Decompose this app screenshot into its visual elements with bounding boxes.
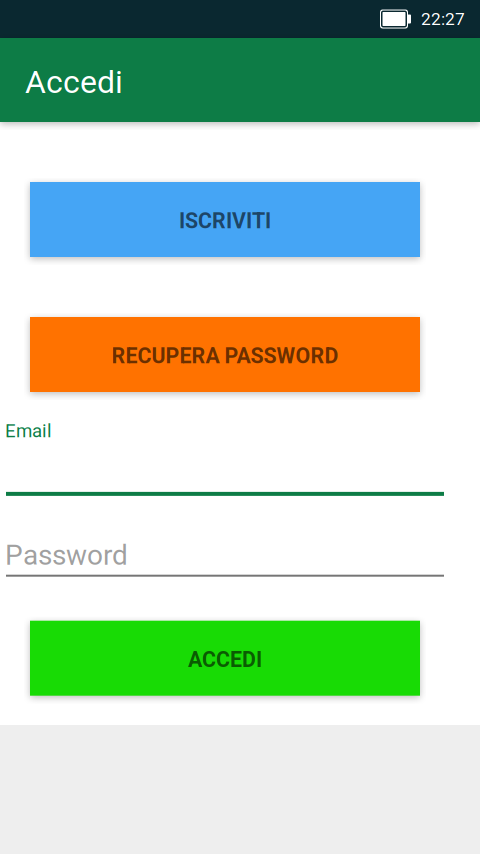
staticText: ACCEDI [188,647,262,672]
button[interactable]: ACCEDI [30,621,420,696]
staticText: Password [5,539,128,572]
staticText: Accedi [25,63,123,101]
button[interactable]: Email [0,420,480,496]
staticText: ISCRIVITI [179,208,271,233]
staticText: Email [5,420,52,442]
button[interactable]: RECUPERA PASSWORD [30,317,420,392]
staticText: 22:27 [421,9,465,29]
button[interactable]: Password [0,539,480,577]
button[interactable]: ISCRIVITI [30,182,420,257]
staticText: RECUPERA PASSWORD [111,343,338,368]
